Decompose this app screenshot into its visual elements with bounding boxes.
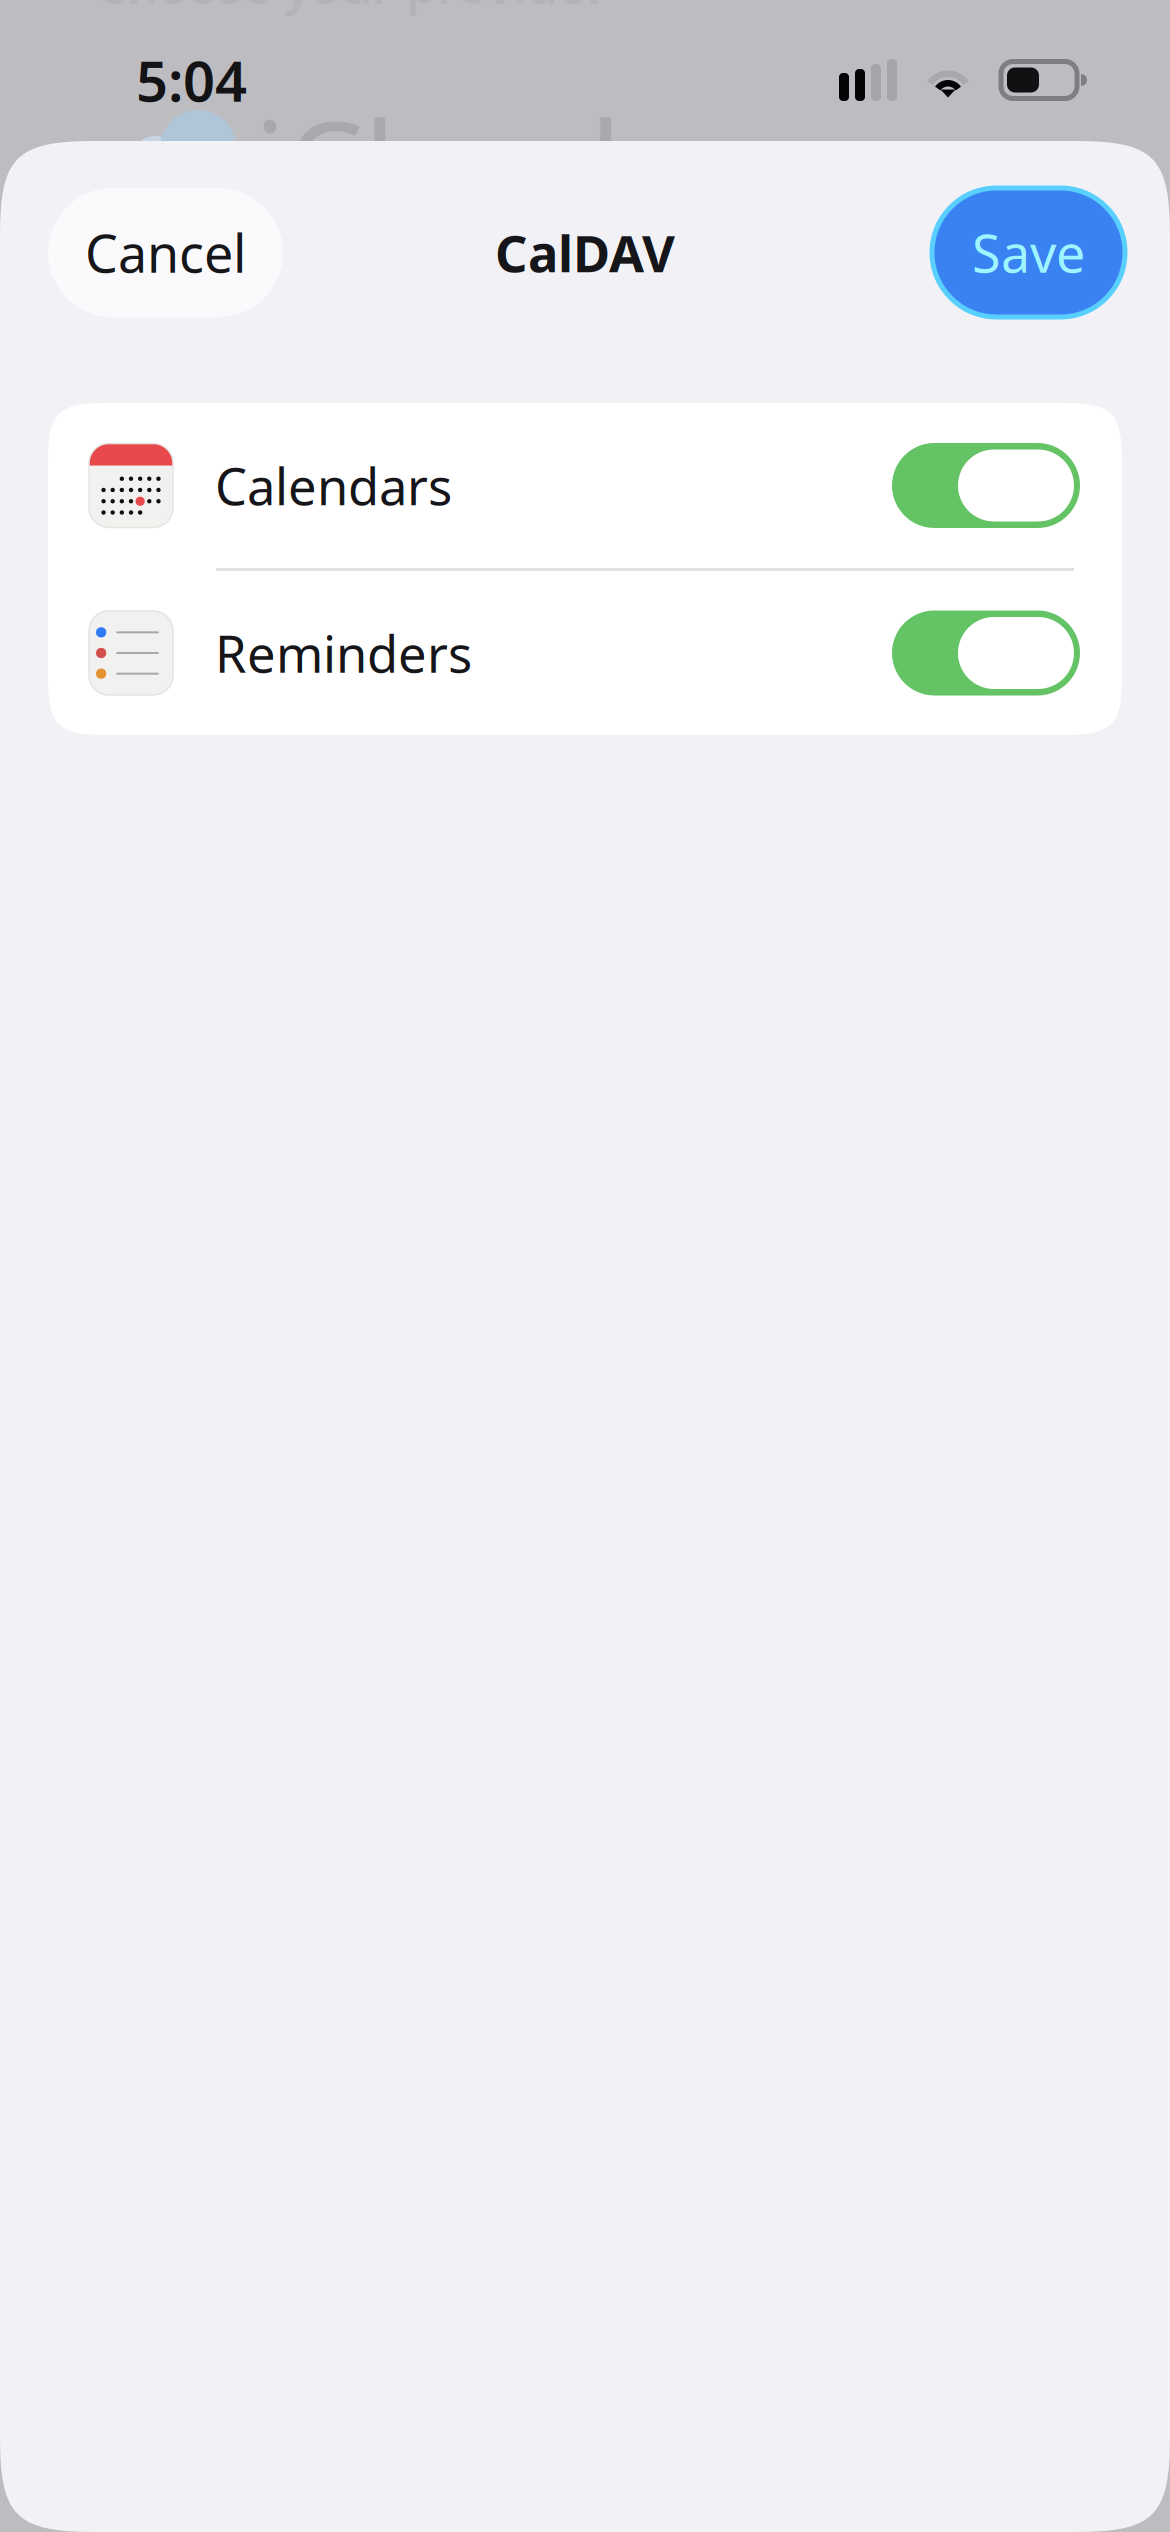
staticText: Save <box>972 218 1085 287</box>
staticText: iCloud <box>254 81 621 244</box>
staticText: Reminders <box>215 619 472 687</box>
staticText: CalDAV <box>495 219 675 286</box>
button[interactable]: Cancel <box>48 188 283 317</box>
button[interactable]: Reminders <box>48 571 1122 735</box>
staticText: 5:04 <box>136 43 247 117</box>
button[interactable]: Calendars <box>48 403 1122 568</box>
staticText: Calendars <box>215 452 452 519</box>
button[interactable]: Save <box>932 188 1125 317</box>
staticText: Cancel <box>85 218 246 287</box>
